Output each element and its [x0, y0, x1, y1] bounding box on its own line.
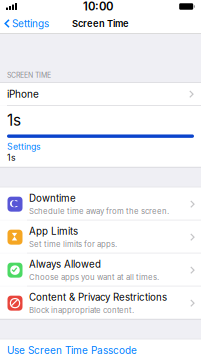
staticText: Settings — [7, 141, 41, 152]
staticText: iPhone — [7, 88, 39, 100]
button[interactable]: App Limits — [0, 220, 201, 253]
staticText: Block inappropriate content. — [29, 306, 134, 315]
staticText: Downtime — [29, 192, 76, 204]
staticText: Set time limits for apps. — [29, 240, 117, 249]
staticText: Content & Privacy Restrictions — [29, 291, 167, 303]
staticText: Schedule time away from the screen. — [29, 207, 169, 216]
staticText: 10:00 — [83, 0, 113, 13]
staticText: Choose apps you want at all times. — [29, 273, 159, 282]
button[interactable]: Downtime — [0, 187, 201, 220]
staticText: App Limits — [29, 225, 78, 237]
staticText: Settings — [12, 17, 49, 30]
button[interactable]: iPhone — [0, 83, 201, 105]
staticText: SCREEN TIME — [7, 71, 51, 79]
staticText: Always Allowed — [29, 258, 101, 270]
staticText: 1s — [7, 152, 16, 163]
staticText: Use Screen Time Passcode — [7, 344, 137, 356]
button[interactable]: Always Allowed — [0, 253, 201, 286]
staticText: Screen Time — [72, 18, 129, 29]
button[interactable]: Content & Privacy Restrictions — [0, 286, 201, 319]
button[interactable]: Settings — [0, 13, 49, 34]
button[interactable]: Use Screen Time Passcode — [0, 339, 201, 359]
staticText: 1s — [7, 111, 21, 129]
